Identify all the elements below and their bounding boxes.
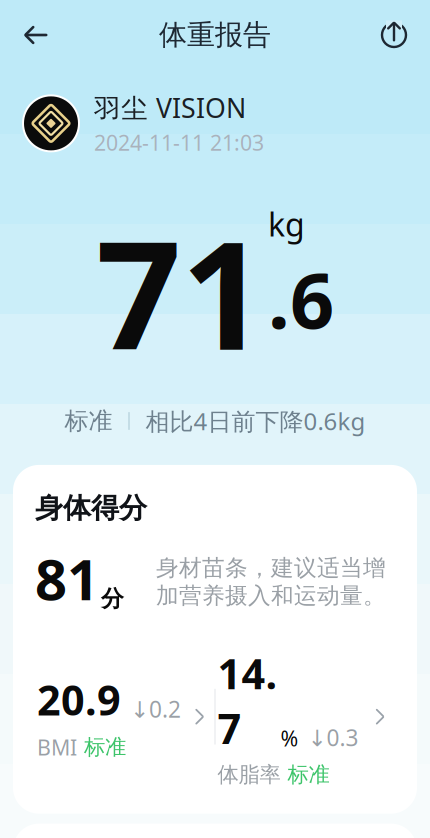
staticText: 体脂率: [217, 761, 280, 788]
button[interactable]: 返回: [14, 13, 58, 57]
staticText: 标准: [84, 734, 126, 760]
staticText: .6: [268, 247, 334, 350]
staticText: 身材苗条，建议适当增加营养摄入和运动量。: [156, 554, 386, 610]
button[interactable]: 分享: [372, 13, 416, 57]
staticText: 标准: [287, 761, 329, 788]
staticText: 81: [35, 541, 99, 616]
staticText: 羽尘 VISION: [94, 90, 246, 125]
staticText: 2024-11-11 21:03: [94, 128, 264, 157]
staticText: 身体得分: [35, 491, 147, 525]
staticText: %: [280, 724, 298, 752]
staticText: 14.7: [217, 646, 277, 755]
staticText: ↓0.3: [307, 722, 358, 752]
staticText: 标准: [64, 406, 112, 436]
staticText: ↓0.2: [130, 694, 181, 724]
button[interactable]: 20.9: [35, 672, 214, 761]
staticText: 分: [101, 585, 124, 613]
staticText: 71: [96, 193, 266, 391]
button[interactable]: 14.7: [215, 646, 395, 788]
staticText: 体重报告: [159, 18, 271, 52]
staticText: BMI: [37, 733, 77, 761]
staticText: 相比4日前下降0.6kg: [145, 405, 365, 437]
staticText: 20.9: [37, 672, 121, 727]
staticText: kg: [268, 203, 305, 245]
